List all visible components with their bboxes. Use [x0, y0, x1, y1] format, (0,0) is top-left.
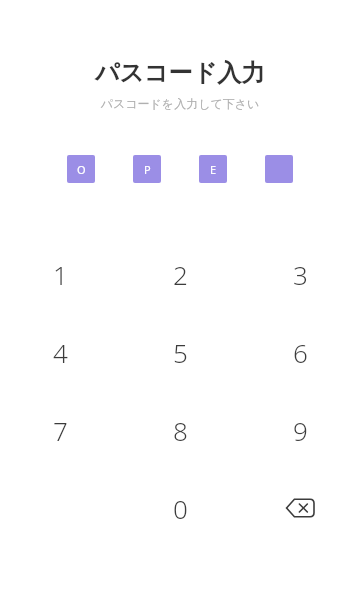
staticText: 0 — [173, 491, 188, 526]
staticText: 4 — [53, 335, 68, 370]
staticText: 3 — [293, 257, 308, 292]
staticText: 2 — [173, 257, 188, 292]
staticText: P — [144, 162, 151, 177]
staticText: 1 — [53, 257, 68, 292]
button[interactable]: Backspace — [240, 469, 360, 547]
button[interactable]: 2 — [120, 235, 240, 313]
button[interactable]: 3 — [240, 235, 360, 313]
button[interactable]: 4 — [0, 313, 120, 391]
button[interactable]: E — [199, 155, 227, 183]
staticText: O — [77, 162, 86, 177]
button[interactable]: 9 — [240, 391, 360, 469]
staticText: 5 — [173, 335, 188, 370]
button[interactable]: 6 — [240, 313, 360, 391]
staticText: パスコードを入力して下さい — [0, 96, 360, 111]
button[interactable]: 1 — [0, 235, 120, 313]
button[interactable]: 5 — [120, 313, 240, 391]
staticText: 8 — [173, 413, 188, 448]
button[interactable] — [265, 155, 293, 183]
button[interactable]: 7 — [0, 391, 120, 469]
staticText: パスコード入力 — [0, 58, 360, 88]
button[interactable]: P — [133, 155, 161, 183]
button[interactable]: O — [67, 155, 95, 183]
staticText: 7 — [53, 413, 68, 448]
button[interactable]: 0 — [120, 469, 240, 547]
staticText: E — [210, 162, 217, 177]
staticText: 6 — [293, 335, 308, 370]
staticText: 9 — [293, 413, 308, 448]
button[interactable]: 8 — [120, 391, 240, 469]
